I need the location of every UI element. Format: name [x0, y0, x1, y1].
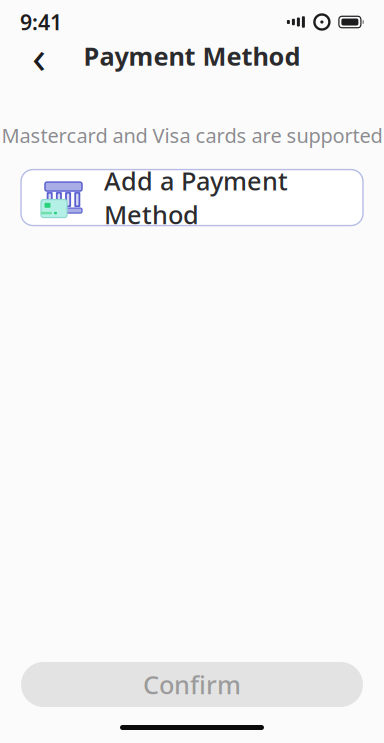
staticText: Payment Method [83, 39, 300, 73]
staticText: ‹ [32, 26, 46, 86]
button[interactable]: Back [19, 36, 59, 76]
button[interactable]: Confirm [0, 662, 384, 707]
staticText: 9:41 [20, 8, 62, 36]
button[interactable]: Add a Payment Method [0, 170, 384, 226]
staticText: Add a Payment Method [104, 164, 288, 231]
staticText: Mastercard and Visa cards are supported [1, 122, 382, 149]
staticText: Confirm [143, 668, 241, 701]
